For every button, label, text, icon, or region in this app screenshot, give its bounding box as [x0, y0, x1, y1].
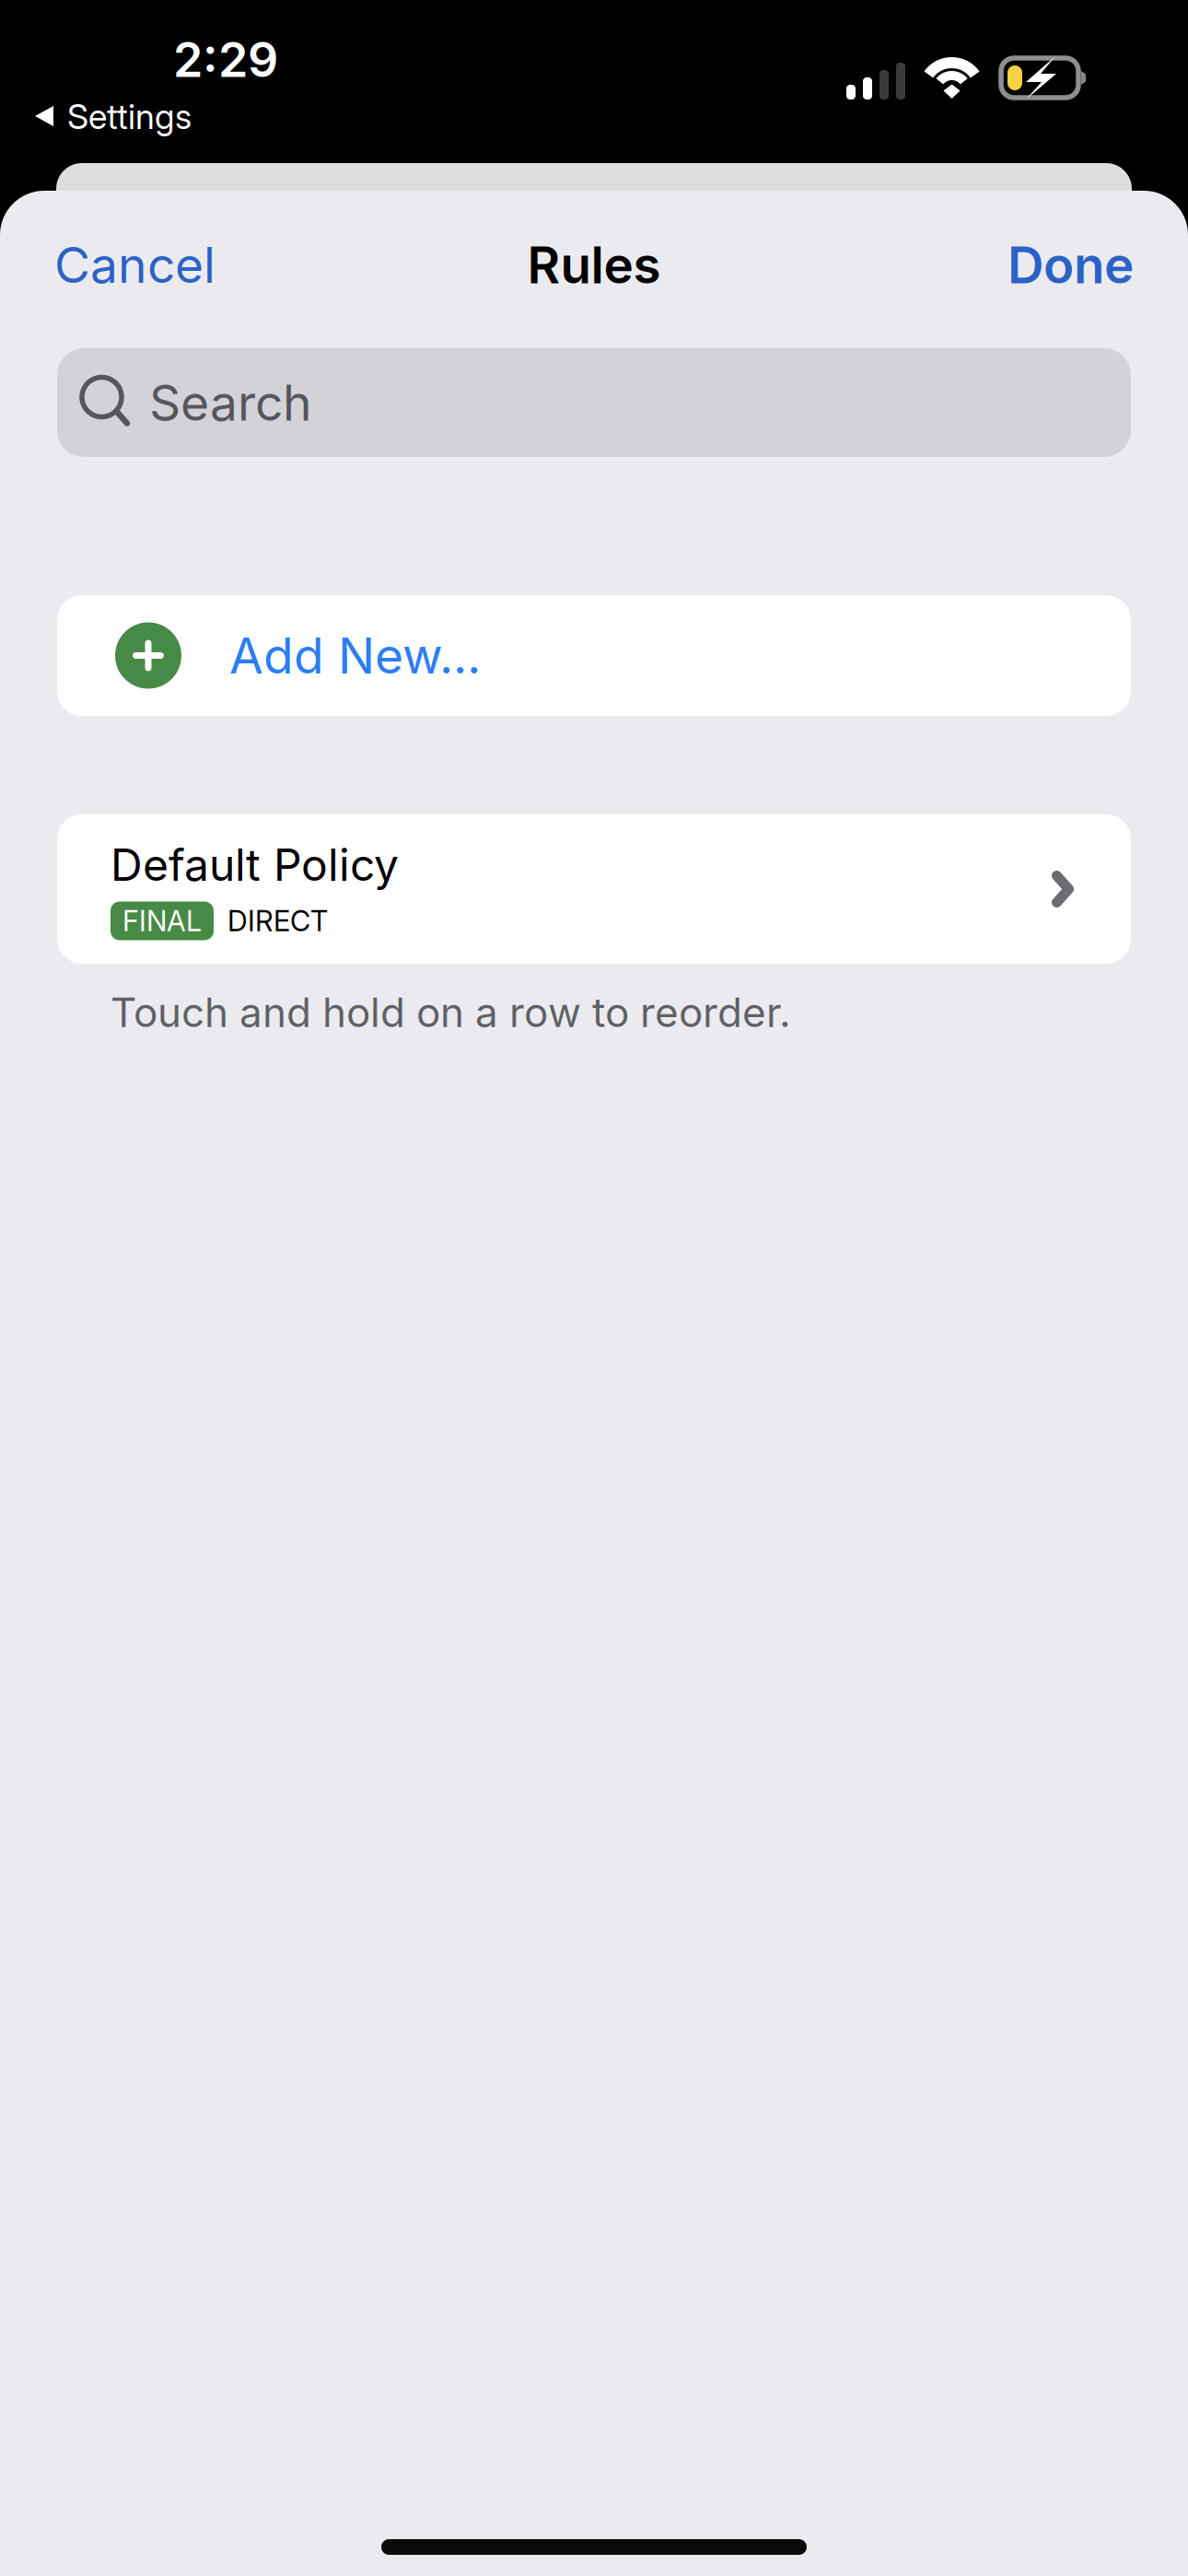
button[interactable]: Cancel: [36, 219, 234, 311]
button[interactable]: Add New...: [0, 595, 1188, 716]
button[interactable]: Default Policy: [0, 814, 1188, 964]
staticText: Touch and hold on a row to reorder.: [111, 988, 791, 1037]
staticText: Search: [149, 373, 312, 432]
staticText: 2:29: [173, 30, 278, 88]
staticText: Rules: [527, 234, 661, 295]
staticText: Settings: [67, 96, 192, 137]
staticText: Done: [1007, 234, 1134, 295]
button[interactable]: Done: [989, 218, 1152, 312]
staticText: DIRECT: [227, 904, 328, 938]
staticText: Add New...: [229, 626, 481, 685]
staticText: Default Policy: [111, 838, 399, 891]
staticText: FINAL: [122, 904, 202, 938]
staticText: Cancel: [54, 235, 215, 295]
